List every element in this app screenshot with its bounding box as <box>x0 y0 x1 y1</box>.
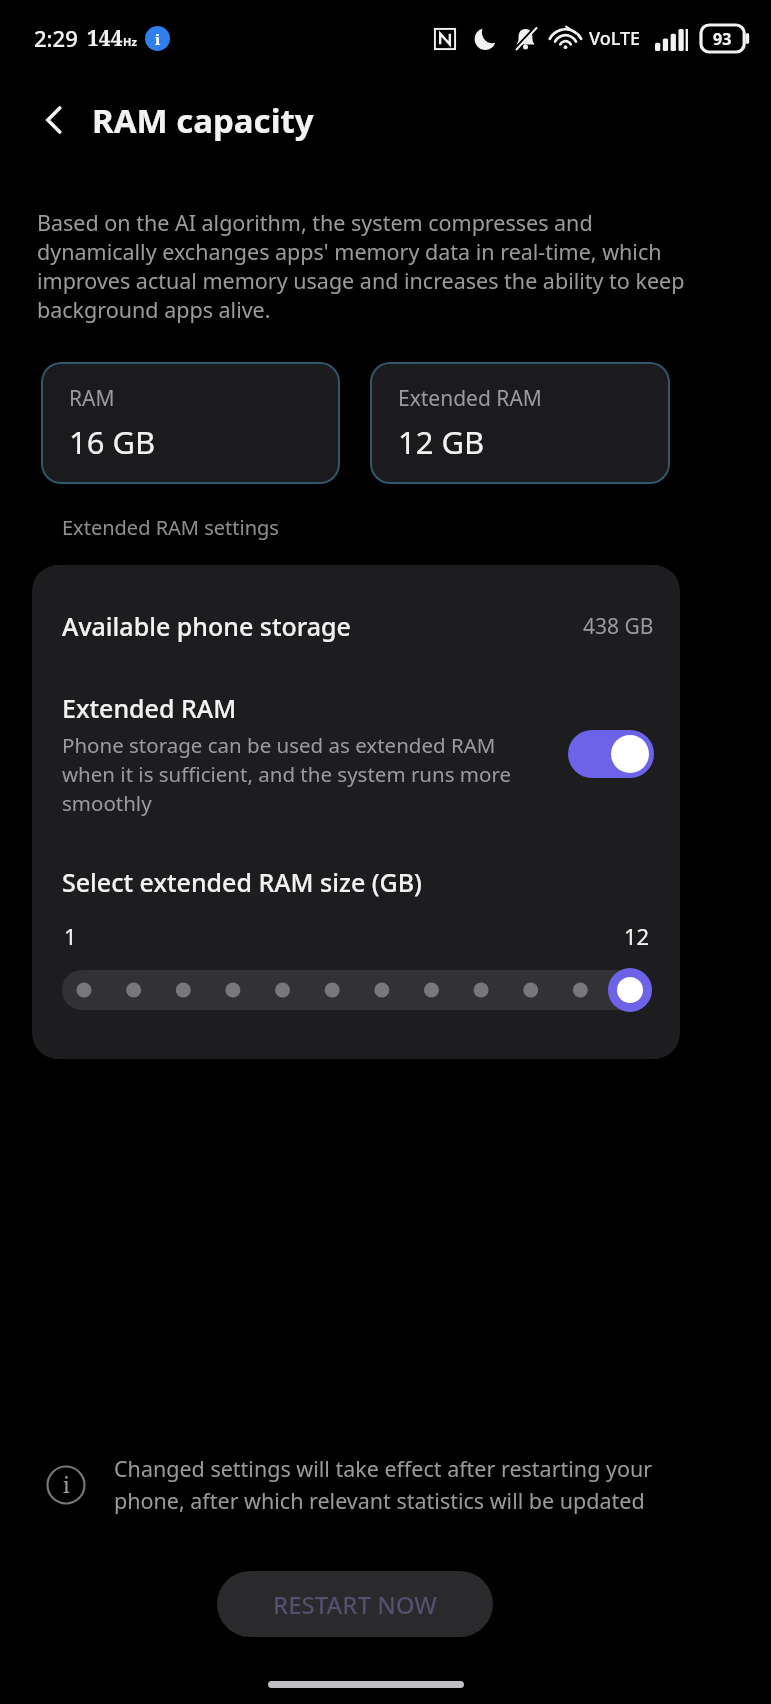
staticText: 16 GB <box>69 421 156 463</box>
staticText: Select extended RAM size (GB) <box>62 865 422 899</box>
staticText: Phone storage can be used as extended RA… <box>62 731 550 817</box>
staticText: 93 <box>713 28 732 50</box>
staticText: 2:29 <box>34 23 78 53</box>
button[interactable]: Extended RAM toggle <box>568 730 654 778</box>
button[interactable]: RAM <box>41 362 340 484</box>
staticText: Extended RAM <box>398 384 542 413</box>
staticText: Available phone storage <box>62 609 351 643</box>
staticText: i <box>155 29 161 49</box>
staticText: 12 <box>624 921 650 951</box>
staticText: RAM capacity <box>92 98 314 143</box>
staticText: Based on the AI algorithm, the system co… <box>37 208 717 324</box>
staticText: 144 <box>87 24 123 53</box>
staticText: Hz <box>123 34 137 49</box>
button[interactable]: Extended RAM <box>370 362 670 484</box>
staticText: Extended RAM settings <box>62 514 279 541</box>
staticText: 1 <box>64 921 77 951</box>
staticText: RESTART NOW <box>273 1588 437 1621</box>
button[interactable]: RESTART NOW <box>217 1571 493 1637</box>
button[interactable]: Extended RAM size slider <box>62 967 652 1013</box>
staticText: RAM <box>69 384 115 413</box>
button[interactable]: Available phone storage <box>32 565 680 647</box>
button[interactable]: Back <box>26 91 84 149</box>
staticText: Changed settings will take effect after … <box>114 1454 671 1515</box>
staticText: VoLTE <box>589 26 641 51</box>
staticText: Extended RAM <box>62 691 237 725</box>
button[interactable]: Extended RAM <box>32 647 680 817</box>
staticText: 12 GB <box>398 421 485 463</box>
staticText: 438 GB <box>583 612 654 641</box>
staticText: i <box>63 1471 70 1500</box>
